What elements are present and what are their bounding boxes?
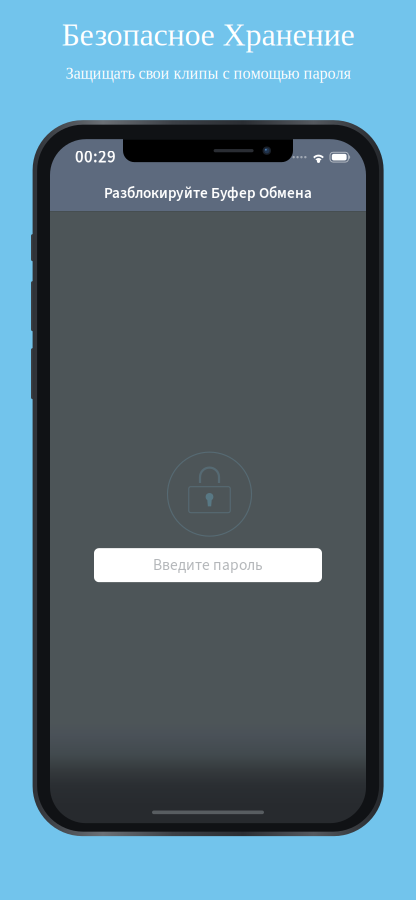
button[interactable]: Введите пароль — [94, 548, 322, 582]
staticText: Введите пароль — [153, 554, 263, 576]
staticText: Разблокируйте Буфер Обмена — [104, 182, 312, 204]
staticText: Защищать свои клипы с помощью пароля — [65, 64, 350, 82]
staticText: Безопасное Хранение — [61, 17, 354, 52]
staticText: 00:29 — [75, 145, 116, 169]
